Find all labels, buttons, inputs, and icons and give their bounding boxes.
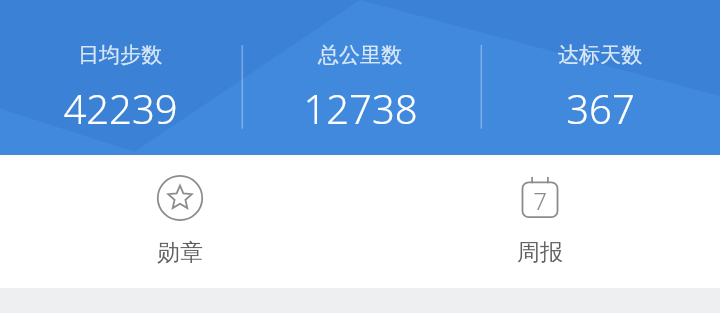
staticText: 达标天数 [558,42,642,68]
staticText: 367 [566,81,635,135]
staticText: 12738 [303,81,418,135]
staticText: 7 [533,184,547,217]
other: 周报 [516,174,564,222]
staticText: 42239 [63,81,178,135]
button[interactable]: 勋章 [0,174,360,267]
button[interactable]: 日均步数 [0,0,240,155]
staticText: 日均步数 [78,42,162,68]
other: 勋章 [156,174,204,222]
staticText: 勋章 [157,238,203,267]
button[interactable]: 总公里数 [240,0,480,155]
staticText: 总公里数 [318,42,402,68]
button[interactable]: 达标天数 [480,0,720,155]
button[interactable]: 周报 [360,174,720,267]
staticText: 周报 [517,238,563,267]
